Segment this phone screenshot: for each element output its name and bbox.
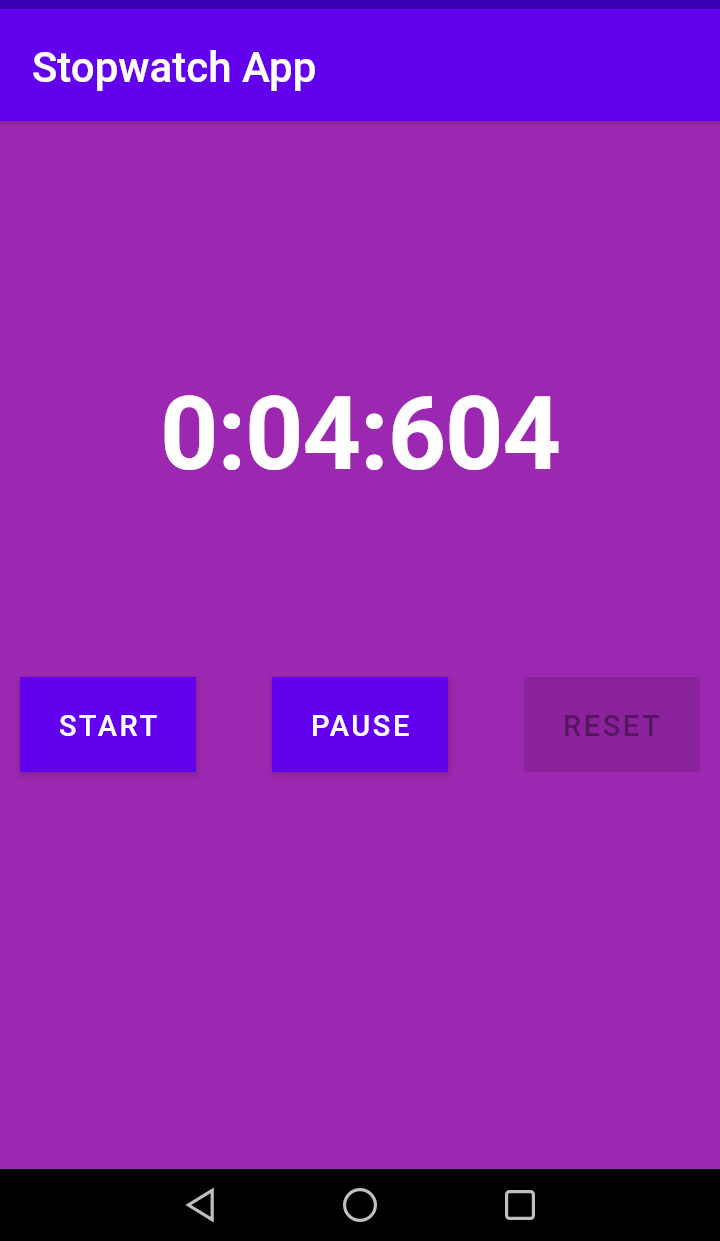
button[interactable]: START xyxy=(20,677,196,772)
button[interactable]: PAUSE xyxy=(272,677,448,772)
button[interactable]: Back xyxy=(168,1171,236,1239)
button[interactable]: RESET xyxy=(524,677,700,772)
staticText: Stopwatch App xyxy=(32,43,317,92)
staticText: RESET xyxy=(563,709,663,743)
button[interactable]: Recent apps xyxy=(486,1171,554,1239)
button[interactable]: Home xyxy=(326,1171,394,1239)
staticText: 0:04:604 xyxy=(160,374,560,494)
staticText: START xyxy=(59,709,160,743)
staticText: PAUSE xyxy=(311,709,412,743)
